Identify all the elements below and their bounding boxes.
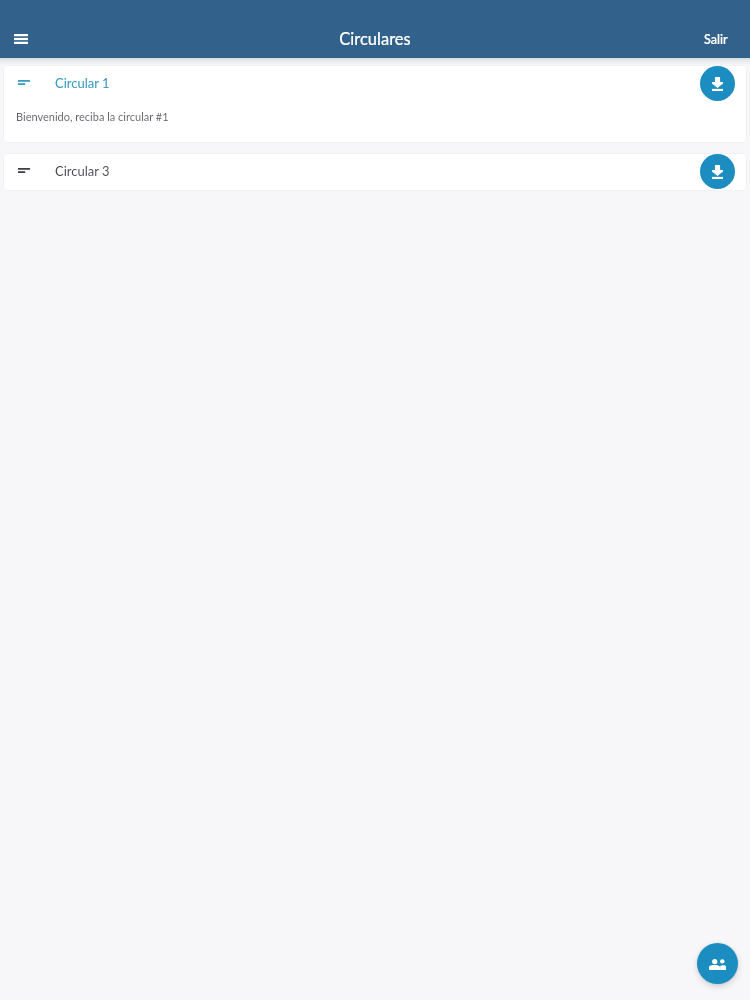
button[interactable]: Menu (5, 23, 37, 55)
button[interactable]: Contactos (697, 943, 738, 984)
button[interactable]: Descargar (700, 66, 735, 101)
button[interactable]: Salir (696, 26, 736, 53)
staticText: Bienvenido, reciba la circular #1 (16, 110, 169, 123)
staticText: Salir (704, 32, 728, 47)
staticText: Circular 1 (55, 75, 110, 91)
button[interactable]: Descargar (700, 154, 735, 189)
button[interactable]: Circular 3 (3, 153, 747, 191)
staticText: Circulares (339, 29, 411, 49)
button[interactable]: Circular 1 (3, 65, 747, 143)
staticText: Circular 3 (55, 163, 110, 179)
